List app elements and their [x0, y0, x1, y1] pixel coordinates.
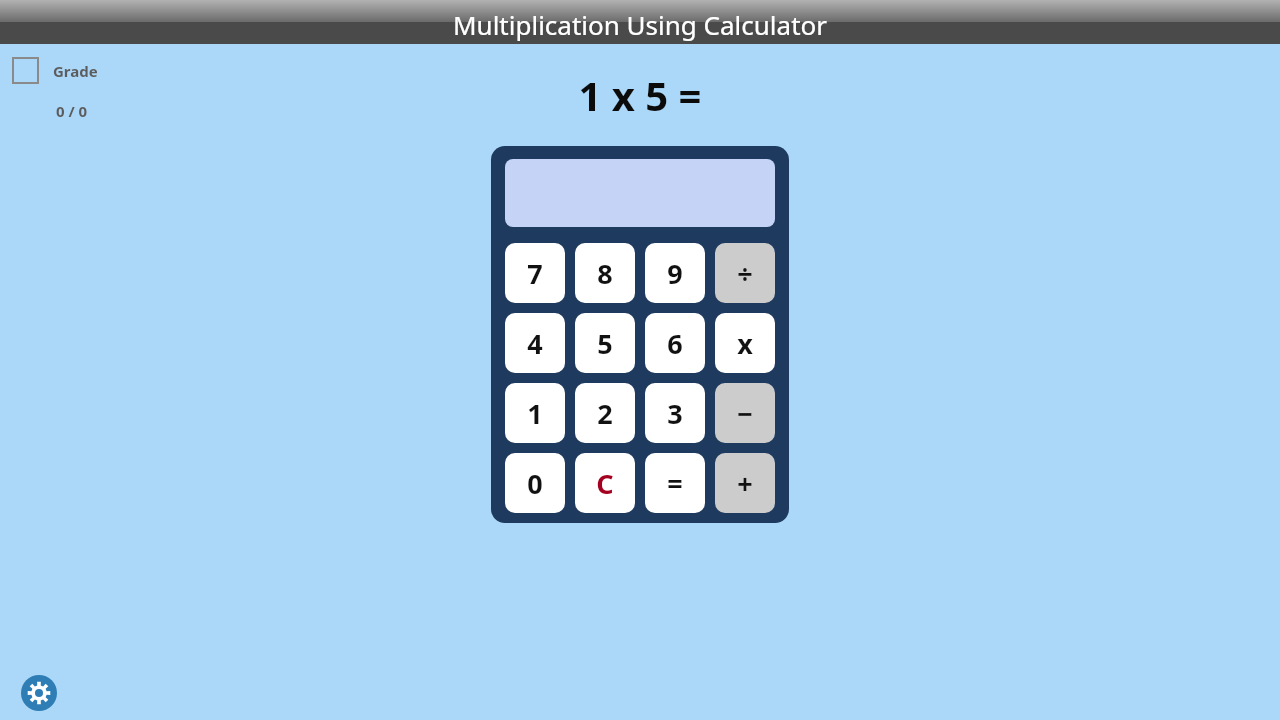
button[interactable]: −	[715, 383, 775, 443]
button[interactable]: 6	[645, 313, 705, 373]
staticText: 0 / 0	[56, 101, 88, 121]
button[interactable]: 7	[505, 243, 565, 303]
button[interactable]: 2	[575, 383, 635, 443]
button[interactable]: +	[715, 453, 775, 513]
button[interactable]: 3	[645, 383, 705, 443]
button[interactable]: =	[645, 453, 705, 513]
staticText: x	[737, 325, 753, 362]
staticText: 4	[527, 325, 543, 362]
button[interactable]: C	[575, 453, 635, 513]
button[interactable]: 9	[645, 243, 705, 303]
staticText: Grade	[53, 61, 98, 81]
staticText: 1	[527, 395, 543, 432]
staticText: 9	[667, 255, 683, 292]
staticText: −	[737, 395, 753, 432]
staticText: =	[667, 465, 683, 502]
staticText: 8	[597, 255, 613, 292]
staticText: Multiplication Using Calculator	[0, 7, 1280, 42]
staticText: ÷	[737, 255, 753, 292]
staticText: 0	[527, 465, 543, 502]
staticText: C	[596, 465, 614, 502]
staticText: 7	[527, 255, 543, 292]
button[interactable]: 4	[505, 313, 565, 373]
staticText: 3	[667, 395, 683, 432]
staticText: +	[737, 465, 753, 502]
button[interactable]	[505, 159, 775, 227]
button[interactable]: ÷	[715, 243, 775, 303]
button[interactable]: 0	[505, 453, 565, 513]
button[interactable]: 5	[575, 313, 635, 373]
button[interactable]: Settings	[21, 675, 57, 711]
button[interactable]: Grade	[12, 57, 98, 84]
staticText: 1 x 5 =	[0, 68, 1280, 122]
staticText: 6	[667, 325, 683, 362]
button[interactable]: 1	[505, 383, 565, 443]
staticText: 2	[597, 395, 613, 432]
button[interactable]: x	[715, 313, 775, 373]
staticText: 5	[597, 325, 613, 362]
button[interactable]: 8	[575, 243, 635, 303]
